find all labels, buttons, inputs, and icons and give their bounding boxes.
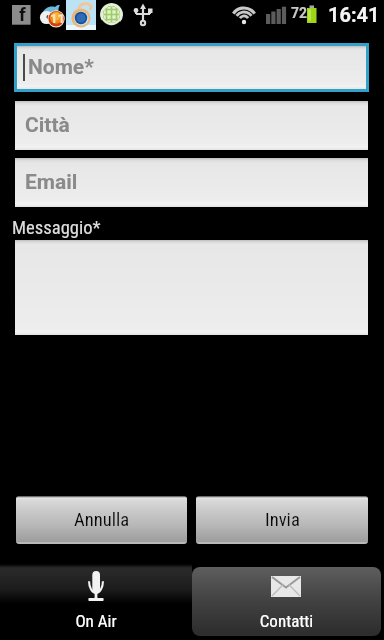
button[interactable]: Email (15, 158, 368, 207)
staticText: Invia (265, 509, 300, 531)
button[interactable] (15, 240, 368, 335)
staticText: 16:41 (328, 3, 380, 26)
staticText: 72 (291, 5, 308, 21)
staticText: Messaggio* (12, 217, 101, 239)
staticText: Annulla (74, 509, 130, 531)
button[interactable]: Città (15, 101, 368, 150)
staticText: Email (25, 170, 78, 195)
staticText: Nome* (28, 55, 94, 80)
button[interactable]: On Air (0, 564, 192, 640)
staticText: Città (25, 113, 70, 138)
staticText: f (19, 3, 26, 25)
staticText: 11 (50, 11, 65, 26)
button[interactable]: Annulla (16, 496, 187, 544)
button[interactable]: Contatti (192, 567, 381, 636)
button[interactable]: Nome* (17, 46, 366, 89)
button[interactable]: Invia (196, 496, 368, 544)
staticText: On Air (0, 611, 192, 631)
staticText: Contatti (192, 611, 381, 631)
